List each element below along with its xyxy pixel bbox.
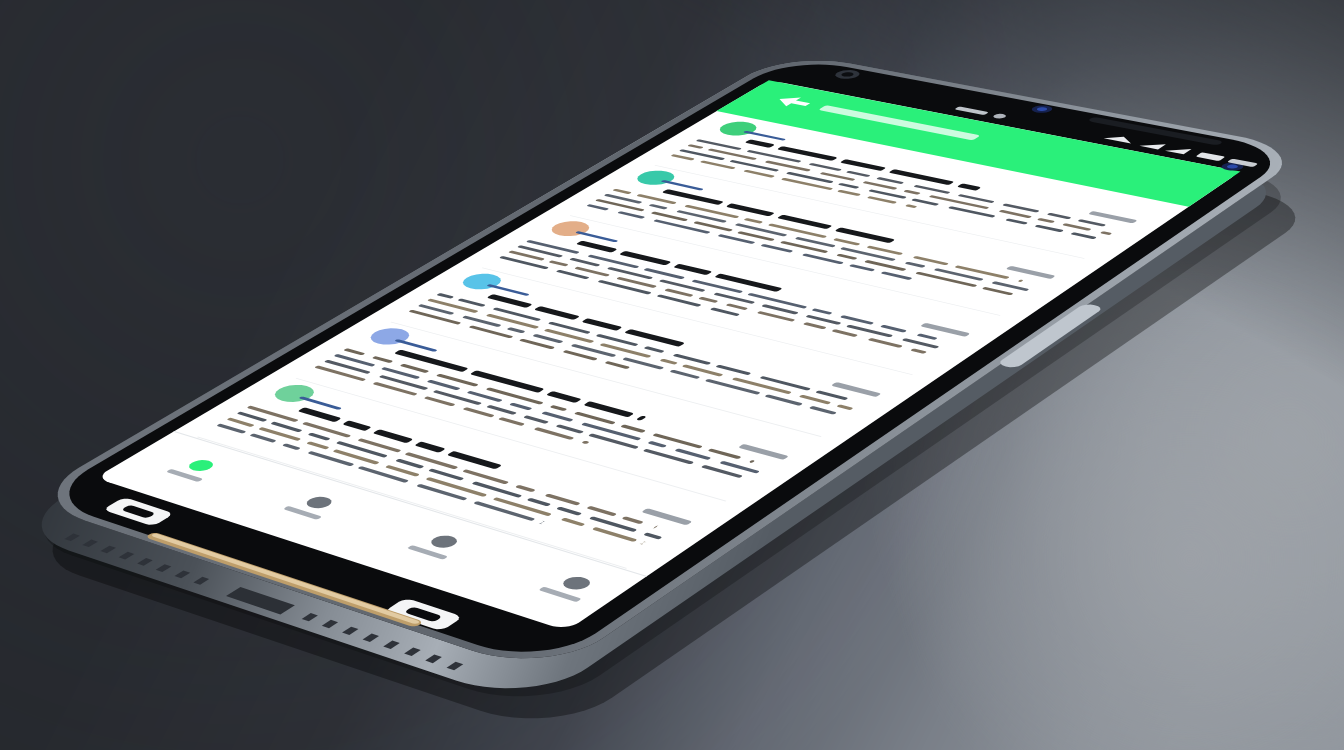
button[interactable]: Conversation 3 xyxy=(936,420,1344,584)
button[interactable]: Conversation 4 xyxy=(754,524,1311,698)
button[interactable]: Conversation 1 xyxy=(1280,222,1344,368)
button[interactable]: Conversation 2 xyxy=(1110,320,1344,475)
button[interactable]: Conversation 5 xyxy=(564,630,1124,750)
button[interactable]: Conversation 6 xyxy=(368,742,931,750)
